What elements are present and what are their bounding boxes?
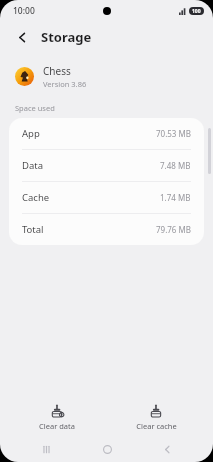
staticText: Version 3.86 (43, 79, 87, 89)
staticText: 70.53 MB (156, 128, 191, 139)
staticText: 7.48 MB (160, 160, 191, 171)
staticText: Cache (22, 191, 50, 204)
button[interactable]: Home (92, 436, 122, 462)
button[interactable]: Recent apps (31, 436, 61, 462)
staticText: Total (22, 223, 44, 236)
staticText: Clear data (39, 421, 75, 431)
button[interactable]: Data (9, 150, 204, 181)
staticText: Storage (41, 28, 92, 46)
button[interactable]: Cache (9, 182, 204, 213)
staticText: 100 (192, 8, 201, 15)
staticText: Clear cache (136, 421, 177, 431)
staticText: Data (22, 159, 44, 172)
button[interactable]: Back (152, 436, 182, 462)
staticText: App (22, 127, 40, 140)
button[interactable]: Back (12, 27, 32, 47)
staticText: Chess (43, 64, 71, 78)
staticText: Space used (15, 103, 55, 113)
button[interactable]: Clear cache (114, 403, 198, 433)
button[interactable]: Clear data (15, 403, 99, 433)
button[interactable]: Total (9, 214, 204, 245)
staticText: 10:00 (13, 5, 35, 17)
button[interactable]: App (9, 118, 204, 149)
staticText: 79.76 MB (156, 224, 191, 235)
staticText: 1.74 MB (160, 192, 191, 203)
